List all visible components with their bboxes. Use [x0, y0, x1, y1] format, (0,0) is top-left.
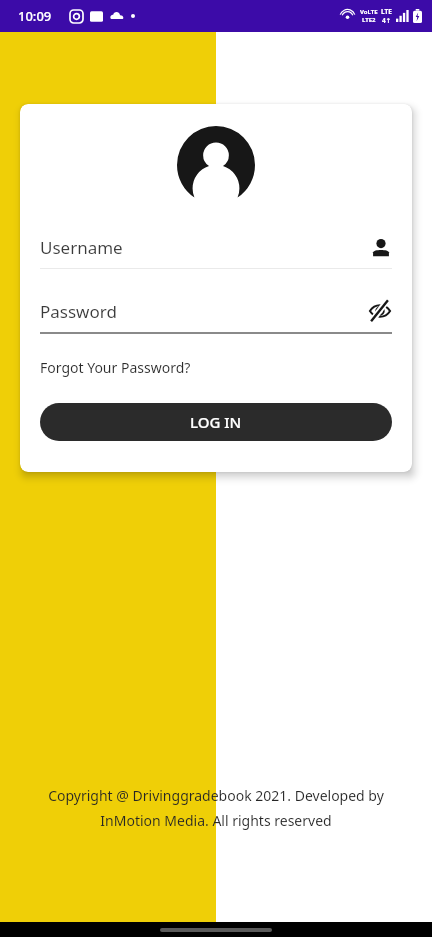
other: Show password [368, 299, 392, 323]
staticText: LTE2 [362, 16, 376, 24]
staticText: LTE [381, 7, 392, 16]
staticText: 10:09 [18, 7, 52, 25]
other: Username [370, 237, 392, 259]
staticText: 4↑ [382, 16, 392, 25]
staticText: Forgot Your Password? [40, 358, 191, 377]
staticText: LOG IN [190, 412, 242, 432]
button[interactable]: LOG IN [40, 403, 392, 441]
button[interactable]: Username [40, 236, 392, 269]
button[interactable]: Password [40, 299, 392, 334]
staticText: VoLTE [360, 8, 378, 16]
button[interactable]: Forgot Your Password? [40, 358, 191, 377]
staticText: Copyright @ Drivinggradebook 2021. Devel… [28, 786, 404, 830]
staticText: Username [40, 236, 370, 259]
staticText: Password [40, 300, 368, 323]
